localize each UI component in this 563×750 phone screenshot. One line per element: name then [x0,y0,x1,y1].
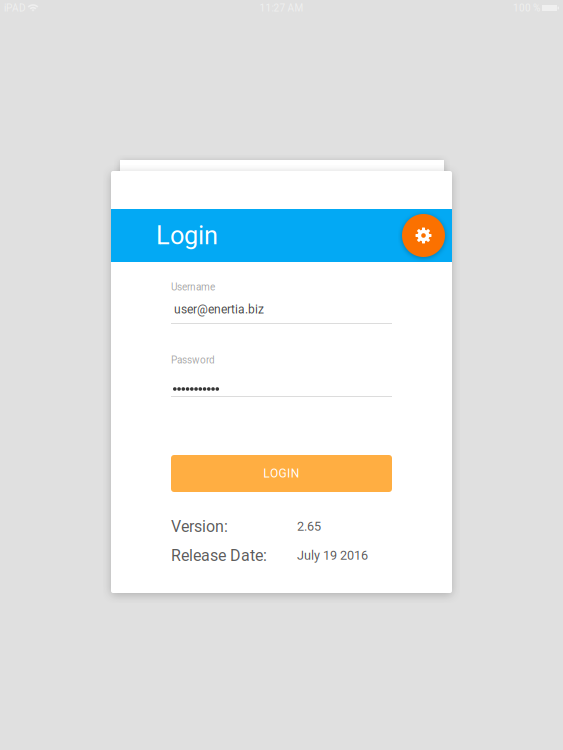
staticText: Release Date: [171,546,267,565]
staticText: Login [156,221,218,250]
staticText: Password [171,354,215,366]
button[interactable]: Username [171,274,392,324]
staticText: Username [171,281,215,293]
staticText: 100 % [513,2,540,14]
button[interactable]: Password [171,347,392,397]
staticText: 2.65 [297,519,321,534]
staticText: iPAD [4,2,26,14]
staticText: Version: [171,517,228,536]
staticText: LOGIN [263,466,300,481]
staticText: user@enertia.biz [174,302,264,317]
button[interactable]: LOGIN [171,455,392,492]
button[interactable]: Settings [402,214,445,257]
staticText: July 19 2016 [297,548,368,563]
staticText: 11:27 AM [259,2,303,14]
